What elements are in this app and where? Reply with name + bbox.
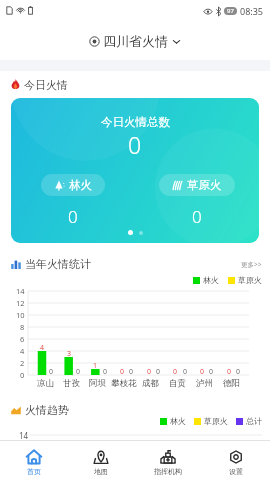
button[interactable]: 指挥机构 (134, 441, 202, 480)
staticText: 0 (103, 367, 108, 377)
button[interactable]: 四川省火情 (83, 29, 187, 53)
staticText: 指挥机构 (154, 467, 182, 476)
staticText: 设置 (229, 467, 243, 476)
staticText: 草原火 (187, 178, 222, 192)
staticText: 0 (76, 367, 81, 377)
staticText: 14 (19, 430, 29, 441)
staticText: 攀枝花 (111, 378, 137, 389)
button[interactable]: 林火 (41, 174, 105, 196)
staticText: 0 (128, 129, 142, 160)
staticText: 0 (183, 367, 188, 377)
staticText: 97 (227, 7, 234, 15)
staticText: 0 (120, 367, 125, 377)
staticText: 四川省火情 (103, 33, 168, 49)
staticText: 今日火情 (24, 78, 68, 92)
staticText: 0 (49, 367, 54, 377)
staticText: 当年火情统计 (25, 257, 91, 271)
staticText: 甘孜 (63, 378, 80, 389)
staticText: 0 (227, 367, 232, 377)
staticText: 8 (20, 322, 25, 332)
staticText: 4 (40, 343, 45, 353)
staticText: 0 (236, 367, 241, 377)
staticText: 泸州 (196, 378, 213, 389)
staticText: 今日火情总数 (101, 115, 170, 129)
staticText: 林火 (170, 416, 186, 426)
staticText: 08:35 (240, 5, 264, 17)
staticText: 火情趋势 (25, 403, 69, 417)
staticText: 凉山 (37, 378, 54, 389)
staticText: 12 (16, 298, 25, 308)
staticText: 14 (16, 286, 25, 296)
staticText: 草原火 (204, 416, 228, 426)
staticText: 林火 (69, 178, 92, 192)
staticText: 成都 (142, 378, 159, 389)
staticText: 0 (129, 367, 134, 377)
staticText: 地图 (94, 467, 108, 476)
button[interactable]: 设置 (202, 441, 270, 480)
staticText: 1 (93, 361, 98, 371)
staticText: 0 (68, 205, 78, 228)
staticText: 阿坝 (89, 378, 106, 389)
staticText: 0 (156, 367, 161, 377)
staticText: 0 (20, 370, 25, 380)
staticText: 6 (20, 334, 25, 344)
button[interactable]: 首页 (0, 441, 67, 480)
staticText: 总计 (246, 416, 262, 426)
staticText: 2 (20, 358, 25, 368)
button[interactable]: 地图 (67, 441, 134, 480)
staticText: 首页 (27, 467, 41, 476)
button[interactable]: 草原火 (159, 174, 235, 196)
staticText: 德阳 (223, 378, 240, 389)
staticText: 0 (200, 367, 205, 377)
staticText: 自贡 (169, 378, 186, 389)
staticText: 10 (16, 310, 25, 320)
staticText: 0 (192, 205, 202, 228)
button[interactable]: 更多>> (241, 260, 262, 269)
staticText: 0 (209, 367, 214, 377)
staticText: 3 (67, 349, 72, 359)
staticText: 4 (20, 346, 25, 356)
staticText: 林火 (203, 275, 219, 285)
staticText: 0 (147, 367, 152, 377)
staticText: 草原火 (238, 275, 262, 285)
staticText: 0 (173, 367, 178, 377)
